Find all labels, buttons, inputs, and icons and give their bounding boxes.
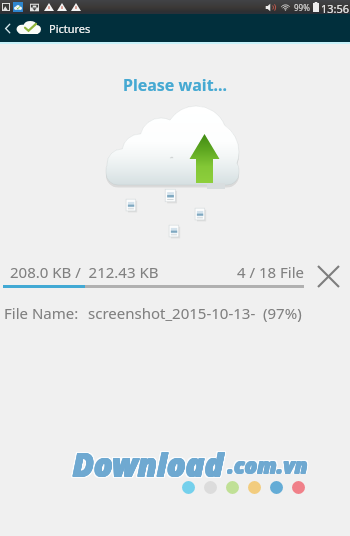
staticText: Download xyxy=(73,444,224,486)
staticText: Download xyxy=(72,443,223,485)
staticText: .com.vn xyxy=(227,452,308,481)
staticText: 4 / 18 File xyxy=(237,262,305,282)
staticText: Download xyxy=(73,442,224,484)
button[interactable]: Back xyxy=(0,14,14,42)
staticText: File Name: xyxy=(4,303,79,323)
staticText: .com.vn xyxy=(228,450,309,479)
staticText: .com.vn xyxy=(228,451,309,480)
staticText: .com.vn xyxy=(226,450,307,479)
staticText: Download xyxy=(71,443,222,485)
staticText: Download xyxy=(72,445,223,487)
staticText: Please wait... xyxy=(123,74,228,96)
staticText: 208.0 KB / 212.43 KB xyxy=(10,262,159,282)
staticText: Download xyxy=(73,443,224,485)
staticText: .com.vn xyxy=(228,452,309,481)
staticText: .com.vn xyxy=(229,450,310,479)
staticText: .com.vn xyxy=(229,452,310,481)
staticText: Download xyxy=(74,442,225,484)
staticText: .com.vn xyxy=(227,450,308,479)
staticText: .com.vn xyxy=(228,451,309,480)
staticText: Download xyxy=(72,444,223,486)
staticText: .com.vn xyxy=(226,451,307,480)
staticText: .com.vn xyxy=(227,452,308,481)
staticText: Download xyxy=(71,442,222,484)
staticText: 13:56 xyxy=(321,1,350,15)
staticText: Download xyxy=(73,443,224,485)
staticText: 99% xyxy=(294,2,310,13)
staticText: Download xyxy=(71,445,222,487)
staticText: .com.vn xyxy=(227,451,308,480)
staticText: Download xyxy=(73,444,224,486)
staticText: Download xyxy=(74,443,225,485)
staticText: Download xyxy=(71,444,222,486)
staticText: Download xyxy=(74,444,225,486)
staticText: .com.vn xyxy=(226,452,307,481)
staticText: .com.vn xyxy=(229,451,310,480)
staticText: screenshot_2015-10-13- (97%) xyxy=(88,303,302,323)
staticText: Pictures xyxy=(49,21,91,36)
staticText: .com.vn xyxy=(227,451,308,480)
staticText: Download xyxy=(72,444,223,486)
staticText: Download xyxy=(73,444,224,486)
staticText: Download xyxy=(72,443,223,485)
button[interactable]: Cancel xyxy=(313,261,343,291)
staticText: .com.vn xyxy=(228,452,309,481)
staticText: Download xyxy=(73,443,224,485)
staticText: Download xyxy=(72,442,223,484)
staticText: Download xyxy=(73,445,224,487)
staticText: Download xyxy=(74,445,225,487)
